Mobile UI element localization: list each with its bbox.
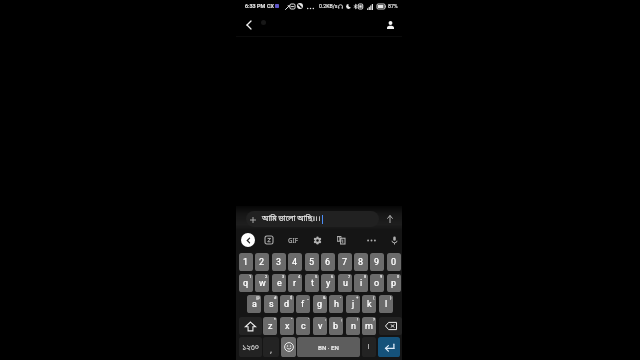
staticText: p bbox=[391, 278, 397, 289]
staticText: 6 bbox=[331, 274, 334, 279]
button[interactable]: Enter bbox=[378, 337, 400, 357]
staticText: 2 bbox=[259, 257, 265, 268]
button[interactable]: j bbox=[346, 295, 360, 313]
button[interactable]: 6 bbox=[321, 253, 335, 271]
staticText: CX bbox=[267, 3, 274, 9]
button[interactable]: e bbox=[272, 274, 286, 292]
staticText: h bbox=[334, 299, 339, 310]
button[interactable]: Backspace bbox=[379, 317, 402, 335]
staticText: , bbox=[270, 344, 273, 355]
button[interactable]: Translate bbox=[334, 231, 348, 249]
staticText: 7 bbox=[342, 257, 348, 268]
staticText: 5 bbox=[315, 274, 318, 279]
button[interactable]: Send bbox=[382, 211, 398, 227]
staticText: x bbox=[285, 321, 290, 332]
button[interactable]: Contact profile bbox=[379, 14, 401, 36]
staticText: s bbox=[269, 299, 274, 310]
button[interactable]: n bbox=[346, 317, 360, 335]
staticText: ) bbox=[390, 295, 392, 300]
button[interactable]: Voice input bbox=[387, 231, 401, 249]
staticText: 8 bbox=[358, 257, 364, 268]
staticText: d bbox=[284, 299, 290, 310]
button[interactable]: a bbox=[247, 295, 261, 313]
button[interactable]: Shift bbox=[239, 317, 262, 335]
button[interactable]: BN · EN bbox=[297, 337, 360, 357]
staticText: - bbox=[340, 295, 342, 300]
button[interactable]: 7 bbox=[338, 253, 352, 271]
button[interactable]: Stickers bbox=[262, 231, 276, 249]
button[interactable]: 9 bbox=[370, 253, 384, 271]
staticText: আমি ভালো আছি।।। bbox=[262, 214, 321, 224]
button[interactable]: y bbox=[321, 274, 335, 292]
staticText: 0.2KB/s bbox=[319, 3, 338, 9]
button[interactable]: v bbox=[313, 317, 327, 335]
button[interactable]: c bbox=[296, 317, 310, 335]
staticText: ' bbox=[308, 317, 309, 322]
button[interactable]: 5 bbox=[305, 253, 319, 271]
button[interactable]: আমি ভালো আছি।।। bbox=[246, 211, 379, 227]
button[interactable]: s bbox=[264, 295, 278, 313]
button[interactable]: q bbox=[239, 274, 253, 292]
button[interactable]: 8 bbox=[354, 253, 368, 271]
button[interactable]: k bbox=[362, 295, 376, 313]
staticText: & bbox=[323, 295, 326, 300]
button[interactable]: x bbox=[280, 317, 294, 335]
staticText: v bbox=[318, 321, 323, 332]
staticText: । bbox=[367, 342, 371, 353]
staticText: ( bbox=[373, 295, 375, 300]
staticText: $ bbox=[290, 295, 293, 300]
staticText: y bbox=[326, 278, 331, 289]
staticText: b bbox=[333, 321, 339, 332]
button[interactable]: Keyboard settings bbox=[310, 231, 324, 249]
staticText: " bbox=[291, 317, 293, 322]
button[interactable]: 3 bbox=[272, 253, 286, 271]
button[interactable]: g bbox=[313, 295, 327, 313]
staticText: w bbox=[259, 278, 266, 289]
staticText: 1 bbox=[249, 274, 252, 279]
staticText: 6 bbox=[325, 257, 331, 268]
button[interactable]: 0 bbox=[387, 253, 401, 271]
staticText: 7 bbox=[348, 274, 351, 279]
button[interactable]: z bbox=[263, 317, 277, 335]
staticText: j bbox=[352, 299, 355, 310]
staticText: 5 bbox=[309, 257, 315, 268]
button[interactable]: Emoji bbox=[281, 337, 296, 357]
button[interactable]: i bbox=[354, 274, 368, 292]
button[interactable]: Close keyboard toolbar bbox=[241, 233, 255, 247]
staticText: t bbox=[311, 278, 314, 289]
button[interactable]: f bbox=[296, 295, 310, 313]
button[interactable]: m bbox=[362, 317, 376, 335]
button[interactable]: u bbox=[338, 274, 352, 292]
button[interactable]: t bbox=[305, 274, 319, 292]
staticText: + bbox=[356, 295, 359, 300]
button[interactable]: GIF bbox=[286, 231, 300, 249]
staticText: : bbox=[325, 317, 326, 322]
staticText: 3 bbox=[282, 274, 285, 279]
button[interactable]: । bbox=[362, 337, 376, 357]
button[interactable]: Back bbox=[238, 14, 260, 36]
button[interactable]: p bbox=[387, 274, 401, 292]
staticText: 0 bbox=[397, 274, 400, 279]
staticText: k bbox=[367, 299, 372, 310]
button[interactable]: 2 bbox=[255, 253, 269, 271]
button[interactable]: h bbox=[329, 295, 343, 313]
staticText: o bbox=[374, 278, 380, 289]
button[interactable]: ১২৩০ bbox=[239, 337, 262, 357]
staticText: a bbox=[252, 299, 257, 310]
button[interactable]: 4 bbox=[288, 253, 302, 271]
staticText: 6:33 PM bbox=[245, 3, 266, 9]
button[interactable]: l bbox=[379, 295, 393, 313]
button[interactable]: r bbox=[288, 274, 302, 292]
staticText: r bbox=[293, 278, 297, 289]
button[interactable]: b bbox=[329, 317, 343, 335]
staticText: 1 bbox=[243, 257, 249, 268]
button[interactable]: o bbox=[370, 274, 384, 292]
button[interactable]: More options bbox=[364, 231, 378, 249]
staticText: @ bbox=[256, 295, 260, 300]
staticText: 2 bbox=[265, 274, 268, 279]
button[interactable]: , bbox=[263, 337, 279, 357]
button[interactable]: 1 bbox=[239, 253, 253, 271]
staticText: # bbox=[274, 295, 277, 300]
button[interactable]: d bbox=[280, 295, 294, 313]
button[interactable]: w bbox=[255, 274, 269, 292]
